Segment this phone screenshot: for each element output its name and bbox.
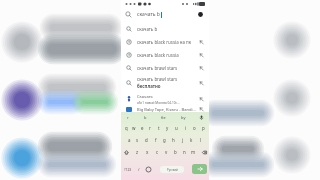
staticText: бе [161, 115, 166, 120]
staticText: скачать black russia [137, 52, 179, 58]
button[interactable]: ?123 [123, 166, 133, 173]
staticText: r [149, 125, 151, 131]
button[interactable]: бе [159, 115, 168, 120]
button[interactable]: Insert suggestion [197, 64, 205, 72]
button[interactable]: Русский [160, 166, 184, 173]
staticText: w [132, 125, 136, 131]
button[interactable]: b [171, 146, 180, 158]
staticText: p [202, 125, 205, 131]
button[interactable]: Insert suggestion [197, 79, 205, 87]
staticText: j [182, 137, 184, 143]
staticText: Big Baby Tape, Kizaru - Bandi... [137, 107, 196, 112]
button[interactable]: j [178, 134, 187, 146]
button[interactable]: a [125, 134, 133, 146]
button[interactable]: Emoji [145, 166, 152, 173]
button[interactable]: Voice input [198, 114, 205, 121]
button[interactable]: Insert suggestion [197, 107, 205, 112]
staticText: b [144, 115, 147, 120]
button[interactable]: Search [192, 164, 207, 174]
staticText: o [193, 125, 196, 131]
button[interactable]: Backspace [200, 148, 208, 156]
staticText: g [163, 137, 166, 143]
button[interactable]: Big Baby Tape, Kizaru - Bandi... [121, 107, 209, 112]
staticText: e [141, 125, 144, 131]
button[interactable]: Скачать [121, 91, 209, 107]
staticText: f [155, 137, 157, 143]
button[interactable]: d [142, 134, 151, 146]
staticText: скачать b [137, 26, 158, 32]
staticText: a [128, 137, 131, 143]
button[interactable]: o [190, 122, 199, 134]
staticText: скачать black russia на пк [137, 39, 192, 45]
button[interactable]: u [172, 122, 181, 134]
button[interactable]: скачать brawl stars [121, 74, 209, 91]
button[interactable]: by [179, 115, 188, 120]
staticText: v [165, 149, 168, 155]
staticText: Скачать [137, 94, 153, 100]
button[interactable]: Insert suggestion [197, 38, 205, 46]
button[interactable]: Insert suggestion [197, 51, 205, 59]
staticText: я5к1 новый Москва 04-10с... [137, 101, 180, 105]
button[interactable]: скачать black russia на пк [121, 35, 209, 48]
staticText: t [158, 125, 160, 131]
staticText: h [172, 137, 175, 143]
button[interactable]: t [154, 122, 163, 134]
staticText: / [138, 167, 140, 172]
staticText: l [200, 137, 202, 143]
button[interactable]: l [196, 134, 205, 146]
button[interactable]: k [187, 134, 196, 146]
button[interactable]: m [189, 146, 198, 158]
button[interactable]: r [146, 122, 154, 134]
staticText: x [146, 149, 149, 155]
staticText: q [125, 125, 128, 131]
staticText: i [185, 125, 187, 131]
staticText: z [136, 149, 139, 155]
button[interactable]: / [137, 166, 141, 173]
staticText: k [190, 137, 193, 143]
button[interactable]: n [180, 146, 189, 158]
button[interactable]: скачать b [121, 22, 209, 35]
button[interactable]: p [199, 122, 208, 134]
staticText: c [156, 149, 159, 155]
button[interactable]: y [163, 122, 172, 134]
button[interactable]: b [142, 115, 149, 120]
staticText: m [191, 149, 196, 155]
button[interactable]: i [181, 122, 190, 134]
button[interactable]: x [142, 146, 152, 158]
staticText: скачать b [137, 11, 160, 18]
button[interactable]: скачать black russia [121, 48, 209, 61]
button[interactable]: скачать b [121, 7, 209, 22]
button[interactable]: c [152, 146, 162, 158]
button[interactable]: h [169, 134, 178, 146]
button[interactable]: s [133, 134, 142, 146]
staticText: бесплатно [137, 83, 161, 89]
button[interactable]: скачать brawl stars [121, 61, 209, 74]
button[interactable]: Voice search [196, 10, 205, 19]
button[interactable]: Insert suggestion [197, 95, 205, 103]
button[interactable]: e [138, 122, 146, 134]
button[interactable]: g [160, 134, 169, 146]
staticText: y [166, 125, 169, 131]
staticText: скачать brawl stars [137, 65, 178, 71]
button[interactable]: q [122, 122, 130, 134]
staticText: ?123 [124, 167, 132, 172]
button[interactable]: w [130, 122, 138, 134]
button[interactable]: f [151, 134, 160, 146]
button[interactable]: z [132, 146, 142, 158]
button[interactable]: г [125, 115, 131, 120]
staticText: Русский [167, 168, 178, 172]
staticText: d [145, 137, 148, 143]
staticText: u [175, 125, 178, 131]
button[interactable]: Shift [122, 148, 130, 156]
button[interactable]: v [162, 146, 171, 158]
staticText: s [136, 137, 139, 143]
staticText: скачать brawl stars [137, 76, 178, 82]
staticText: n [183, 149, 186, 155]
staticText: г [127, 115, 129, 120]
staticText: by [181, 115, 186, 120]
staticText: b [174, 149, 177, 155]
